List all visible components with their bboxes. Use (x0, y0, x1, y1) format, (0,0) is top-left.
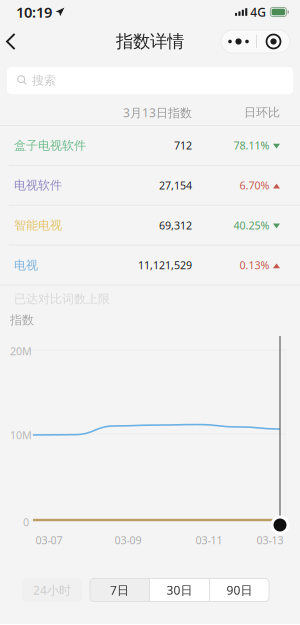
button[interactable]: 90日 (210, 578, 269, 601)
staticText: 6.70% (239, 178, 269, 192)
button[interactable]: 搜索 (7, 67, 293, 94)
staticText: 30日 (166, 582, 192, 598)
staticText: 11,121,529 (138, 258, 192, 272)
staticText: 03-11 (195, 533, 222, 547)
button[interactable]: More (221, 30, 256, 53)
staticText: 4G (250, 4, 266, 20)
staticText: 27,154 (159, 178, 192, 192)
staticText: 3月13日指数 (123, 104, 192, 120)
staticText: 03-13 (256, 533, 283, 547)
button[interactable]: 30日 (150, 578, 209, 601)
staticText: 日环比 (244, 105, 280, 120)
staticText: 指数 (10, 313, 34, 327)
staticText: 69,312 (159, 218, 192, 232)
staticText: 712 (174, 138, 192, 153)
staticText: 10:19 (16, 2, 52, 22)
staticText: 0 (23, 515, 29, 529)
staticText: 03-09 (114, 533, 141, 547)
staticText: 20M (10, 344, 32, 358)
button[interactable]: Close (257, 30, 290, 53)
staticText: 智能电视 (14, 218, 62, 233)
staticText: 90日 (226, 582, 252, 598)
staticText: 已达对比词数上限 (14, 292, 110, 306)
staticText: 搜索 (32, 73, 56, 88)
button[interactable]: 电视 (0, 246, 300, 285)
button[interactable]: 智能电视 (0, 206, 300, 245)
staticText: 40.25% (233, 218, 269, 232)
button[interactable]: 盒子电视软件 (0, 126, 300, 165)
button[interactable]: 电视软件 (0, 166, 300, 205)
staticText: 指数详情 (116, 31, 184, 52)
button[interactable]: Back (0, 24, 26, 59)
staticText: 03-07 (35, 533, 62, 547)
staticText: 电视 (14, 258, 38, 272)
staticText: 78.11% (233, 138, 269, 153)
button[interactable]: 7日 (90, 578, 149, 601)
staticText: 10M (10, 428, 32, 442)
staticText: 盒子电视软件 (14, 138, 86, 153)
staticText: 24小时 (33, 582, 71, 598)
staticText: 电视软件 (14, 178, 62, 193)
staticText: 7日 (110, 582, 129, 598)
staticText: 0.13% (239, 258, 269, 272)
button[interactable]: 24小时 (22, 578, 82, 601)
